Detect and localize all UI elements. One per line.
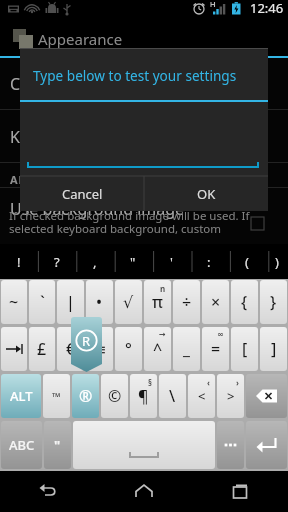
button[interactable]: Delete (246, 374, 287, 418)
button[interactable]: = (202, 327, 229, 371)
button[interactable]: ® (72, 374, 99, 418)
button[interactable]: Enter (246, 421, 287, 469)
button[interactable]: More symbols (217, 421, 244, 469)
staticText: } (270, 291, 277, 313)
staticText: ^ (153, 338, 163, 360)
button[interactable]: | (57, 280, 84, 324)
staticText: ® (79, 385, 93, 407)
button[interactable]: ) (266, 244, 288, 279)
staticText: ) (275, 253, 279, 271)
staticText: Cancel (62, 185, 103, 203)
staticText: ( (245, 253, 249, 271)
button[interactable]: × (202, 280, 229, 324)
staticText: { (241, 291, 248, 313)
button[interactable]: ¶ (130, 374, 157, 418)
staticText: , (93, 253, 97, 271)
staticText: ALT (10, 387, 33, 405)
button[interactable]: _ (173, 327, 200, 371)
button[interactable]: } (260, 280, 287, 324)
staticText: › (236, 377, 239, 388)
staticText: R (82, 332, 91, 350)
button[interactable]: ÷ (173, 280, 200, 324)
button[interactable]: £ (29, 327, 55, 371)
button[interactable]: " (114, 244, 152, 279)
button[interactable]: ? (38, 244, 76, 279)
button[interactable]: ^ (144, 327, 171, 371)
button[interactable] (1, 327, 27, 371)
staticText: " (54, 436, 61, 454)
button[interactable]: " (44, 421, 71, 469)
staticText: : (207, 253, 211, 271)
button[interactable]: √ (115, 280, 142, 324)
staticText: ¶ (138, 385, 149, 407)
staticText: ABC (9, 436, 35, 454)
staticText: n (160, 283, 166, 294)
staticText: Use background image (10, 198, 185, 220)
button[interactable]: ≡ (86, 327, 113, 371)
button[interactable]: ALT (1, 374, 41, 418)
button[interactable]: Back (0, 471, 96, 512)
button[interactable]: • (86, 280, 113, 324)
staticText: Keyboard (10, 126, 82, 148)
button[interactable] (73, 421, 215, 469)
staticText: 12:46 (250, 0, 284, 17)
button[interactable]: ] (260, 327, 287, 371)
button[interactable]: © (101, 374, 128, 418)
button[interactable]: Clipboard (0, 58, 288, 109)
staticText: Appearance (38, 29, 123, 49)
button[interactable]: ! (0, 244, 38, 279)
staticText: • (96, 291, 103, 313)
staticText: © (108, 385, 122, 407)
button[interactable]: ` (29, 280, 55, 324)
staticText: > (227, 387, 235, 405)
staticText: ‹ (207, 377, 210, 388)
staticText: If checked background image will be used… (9, 208, 250, 224)
button[interactable]: π (144, 280, 171, 324)
button[interactable]: \ (159, 374, 186, 418)
button[interactable]: ° (115, 327, 142, 371)
button[interactable]: , (76, 244, 114, 279)
staticText: [ (242, 338, 248, 360)
button[interactable]: > (217, 374, 244, 418)
staticText: ' (170, 253, 173, 271)
staticText: = (211, 338, 221, 360)
staticText: ? (54, 253, 60, 271)
button[interactable]: ( (228, 244, 266, 279)
staticText: ™ (52, 389, 61, 404)
staticText: | (66, 291, 75, 313)
staticText: _ (183, 338, 190, 360)
button[interactable]: ~ (1, 280, 27, 324)
staticText: ∞ (217, 330, 224, 339)
staticText: § (148, 377, 152, 388)
button[interactable]: { (231, 280, 258, 324)
staticText: < (198, 387, 206, 405)
button[interactable]: ™ (43, 374, 70, 418)
staticText: \ (169, 385, 176, 407)
staticText: selected keyboard background, custom (9, 221, 222, 237)
staticText: " (130, 253, 136, 271)
button[interactable]: ABC (1, 421, 42, 469)
staticText: π (152, 291, 163, 313)
staticText: √ (123, 293, 134, 312)
staticText: ! (17, 253, 21, 271)
button[interactable]: Keyboard (0, 110, 288, 162)
staticText: ` (40, 291, 45, 313)
button[interactable]: OK (144, 177, 268, 211)
button[interactable]: Use background image (0, 188, 288, 246)
button[interactable]: ' (152, 244, 190, 279)
staticText: £ (37, 338, 47, 360)
button[interactable]: Home (96, 471, 192, 512)
staticText: ADVANCED (10, 172, 77, 187)
staticText: € (66, 338, 76, 360)
staticText: ≡ (93, 340, 107, 359)
button[interactable]: Recents (192, 471, 288, 512)
staticText: → (159, 330, 166, 339)
button[interactable]: < (188, 374, 215, 418)
button[interactable]: : (190, 244, 228, 279)
button[interactable]: € (57, 327, 84, 371)
staticText: ÷ (182, 291, 192, 313)
staticText: × (211, 291, 221, 313)
button[interactable]: Cancel (20, 177, 144, 211)
button[interactable]: [ (231, 327, 258, 371)
staticText: Type below to test your settings (33, 66, 237, 85)
